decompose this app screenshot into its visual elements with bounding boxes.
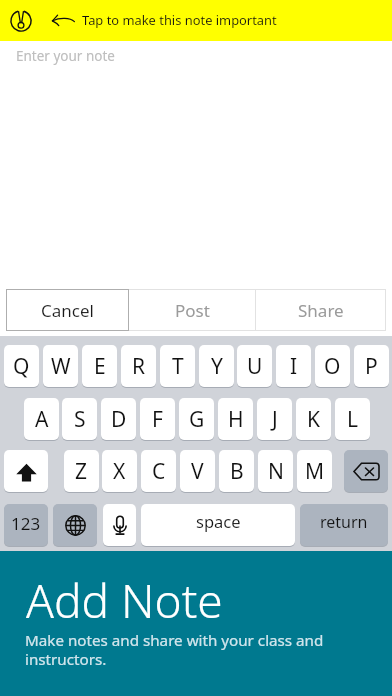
staticText: C bbox=[152, 457, 166, 486]
button[interactable]: space bbox=[141, 504, 295, 546]
staticText: Z bbox=[75, 457, 88, 486]
button[interactable]: 123 bbox=[4, 504, 48, 546]
button[interactable]: S bbox=[62, 398, 97, 440]
button[interactable]: Z bbox=[64, 450, 99, 492]
staticText: G bbox=[189, 405, 205, 434]
button[interactable]: C bbox=[141, 450, 176, 492]
staticText: A bbox=[35, 405, 49, 434]
staticText: X bbox=[113, 457, 126, 486]
button[interactable]: Change keyboard language bbox=[53, 504, 97, 546]
staticText: return bbox=[320, 511, 368, 533]
staticText: U bbox=[247, 352, 263, 381]
staticText: S bbox=[74, 405, 86, 434]
button[interactable]: N bbox=[258, 450, 293, 492]
button[interactable]: X bbox=[102, 450, 137, 492]
button[interactable]: H bbox=[218, 398, 253, 440]
staticText: Share bbox=[298, 299, 344, 322]
button[interactable]: W bbox=[43, 345, 78, 387]
button[interactable]: M bbox=[297, 450, 332, 492]
button[interactable]: O bbox=[315, 345, 350, 387]
staticText: P bbox=[365, 352, 378, 381]
staticText: Y bbox=[211, 352, 223, 381]
staticText: L bbox=[347, 405, 359, 434]
button[interactable]: E bbox=[82, 345, 117, 387]
staticText: Tap to make this note important bbox=[82, 11, 277, 29]
button[interactable]: Voice input bbox=[103, 504, 136, 546]
staticText: N bbox=[268, 457, 284, 486]
staticText: Cancel bbox=[41, 299, 94, 322]
staticText: M bbox=[305, 457, 325, 486]
button[interactable]: Y bbox=[199, 345, 234, 387]
button[interactable]: Backspace bbox=[344, 450, 388, 492]
button[interactable]: Share bbox=[255, 289, 386, 331]
button[interactable]: L bbox=[335, 398, 370, 440]
staticText: T bbox=[172, 352, 184, 381]
button[interactable]: B bbox=[219, 450, 254, 492]
button[interactable]: return bbox=[300, 504, 388, 546]
staticText: B bbox=[230, 457, 244, 486]
button[interactable]: Post bbox=[128, 289, 256, 331]
button[interactable]: Shift bbox=[4, 450, 48, 492]
staticText: 123 bbox=[11, 512, 41, 535]
button[interactable]: Cancel bbox=[6, 289, 129, 331]
staticText: Post bbox=[175, 299, 210, 322]
staticText: Add Note bbox=[26, 569, 223, 632]
button[interactable]: K bbox=[296, 398, 331, 440]
button[interactable]: T bbox=[160, 345, 195, 387]
button[interactable]: D bbox=[101, 398, 136, 440]
button[interactable]: I bbox=[276, 345, 311, 387]
staticText: K bbox=[307, 405, 320, 434]
button[interactable]: J bbox=[257, 398, 292, 440]
button[interactable]: Tap to make this note important bbox=[0, 0, 392, 41]
button[interactable]: G bbox=[179, 398, 214, 440]
staticText: W bbox=[51, 352, 71, 381]
staticText: J bbox=[272, 405, 278, 434]
staticText: D bbox=[111, 405, 127, 434]
staticText: I bbox=[290, 352, 298, 381]
button[interactable]: F bbox=[140, 398, 175, 440]
button[interactable]: R bbox=[121, 345, 156, 387]
staticText: Q bbox=[13, 352, 30, 381]
staticText: O bbox=[324, 352, 341, 381]
staticText: E bbox=[94, 352, 106, 381]
staticText: Enter your note bbox=[16, 47, 115, 65]
button[interactable]: Enter your note bbox=[0, 41, 392, 285]
staticText: V bbox=[191, 457, 204, 486]
staticText: H bbox=[228, 405, 244, 434]
staticText: Make notes and share with your class and… bbox=[25, 630, 324, 669]
button[interactable]: U bbox=[237, 345, 272, 387]
staticText: R bbox=[132, 352, 146, 381]
button[interactable]: A bbox=[24, 398, 59, 440]
staticText: F bbox=[152, 405, 163, 434]
button[interactable]: P bbox=[354, 345, 389, 387]
staticText: space bbox=[196, 510, 241, 532]
button[interactable]: V bbox=[180, 450, 215, 492]
button[interactable]: Q bbox=[4, 345, 39, 387]
